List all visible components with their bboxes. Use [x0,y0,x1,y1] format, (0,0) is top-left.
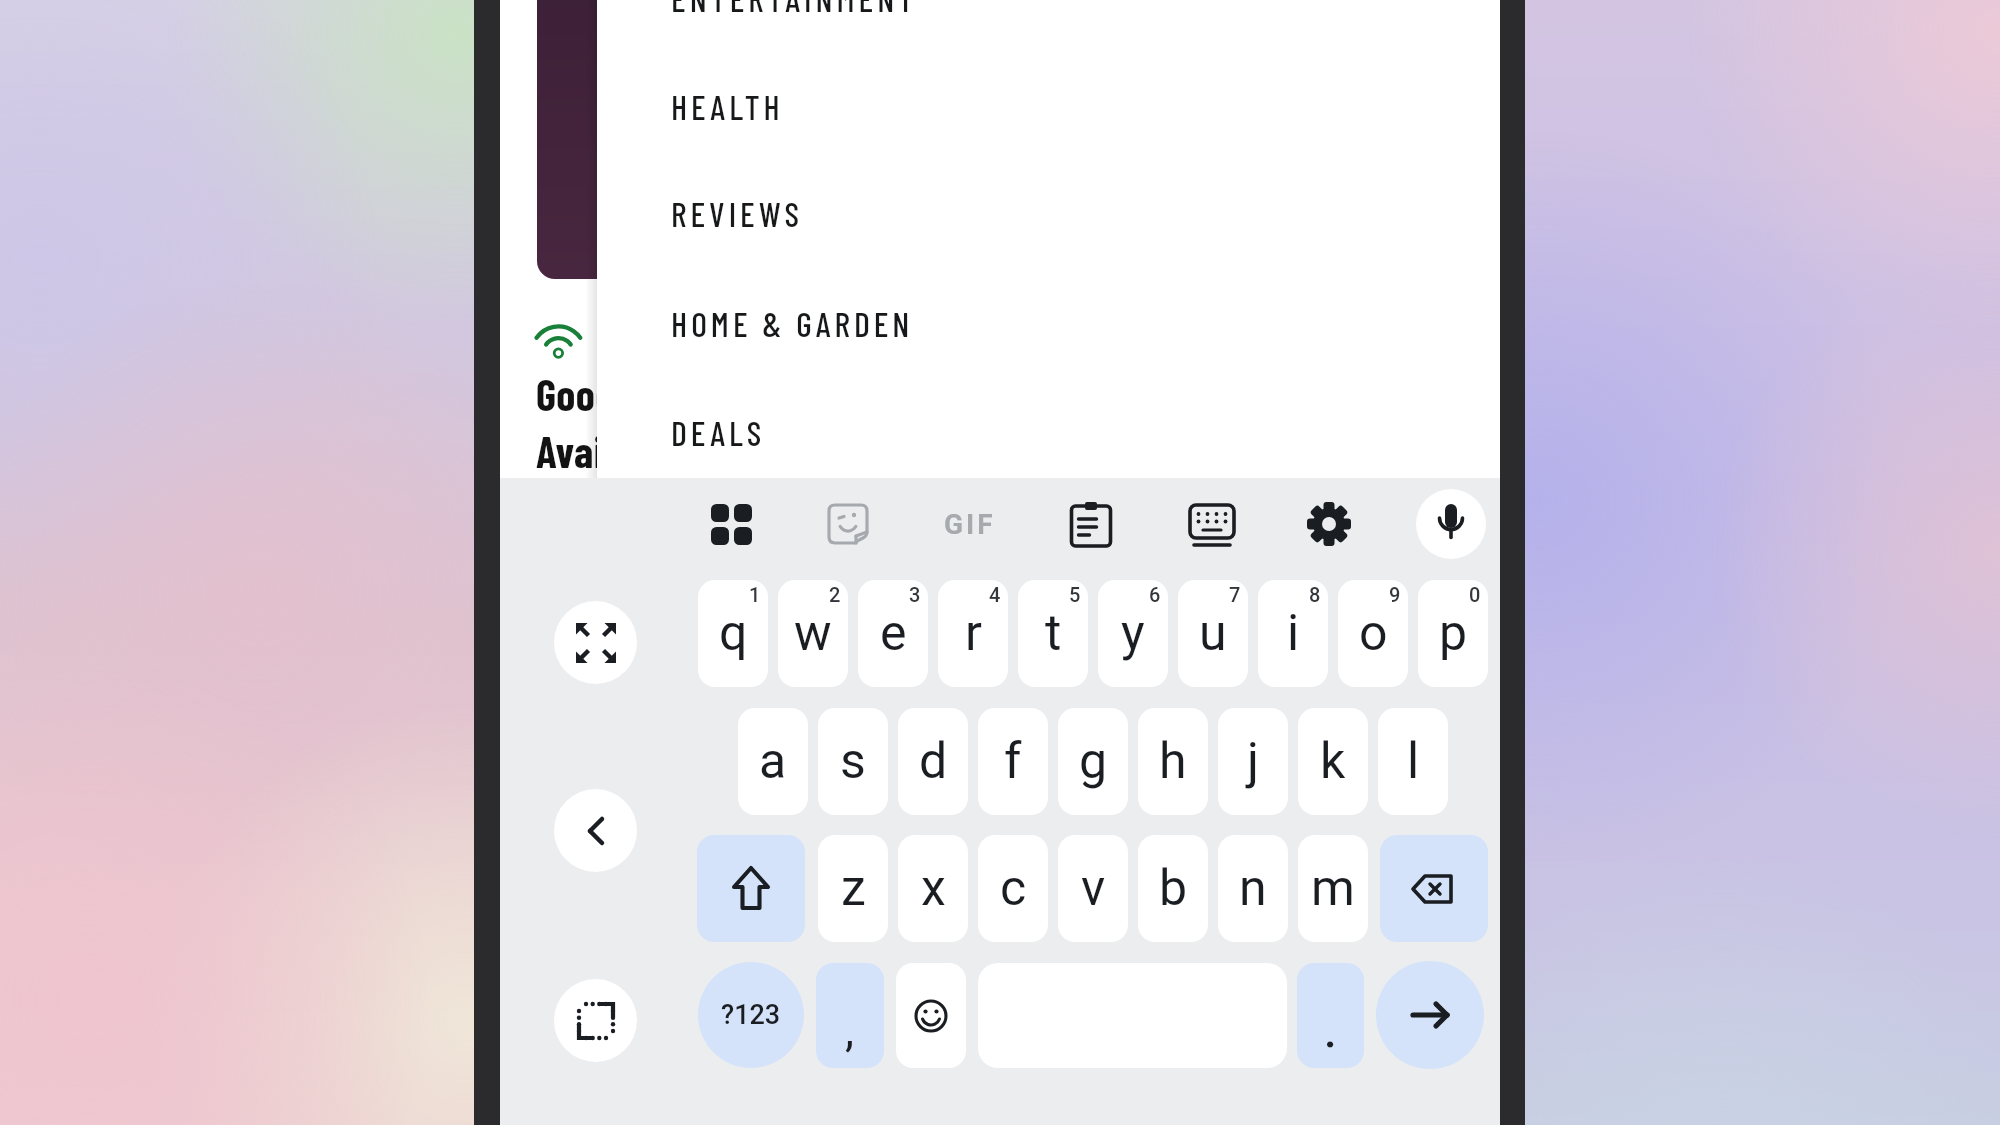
staticText: s [840,732,866,791]
staticText: Good [536,368,616,420]
button[interactable]: . [1297,963,1364,1068]
button[interactable] [1067,500,1115,548]
button[interactable]: b [1138,835,1208,942]
staticText: 2 [829,583,841,606]
staticText: m [1311,859,1355,918]
staticText: y [1121,604,1145,663]
button[interactable]: f [978,708,1048,815]
button[interactable] [698,580,768,687]
staticText: Avail [536,425,614,477]
button[interactable] [938,580,1008,687]
button[interactable]: ?123 [698,962,804,1068]
button[interactable] [1338,580,1408,687]
staticText: 7 [1229,583,1241,606]
staticText: 5 [1069,583,1081,606]
button[interactable] [824,500,872,548]
staticText: v [1081,859,1106,918]
staticText: x [921,859,946,918]
button[interactable]: HOME & GARDEN [660,301,1410,345]
staticText: 3 [909,583,921,606]
staticText: e [880,604,907,663]
staticText: . [1323,995,1338,1061]
staticText: ?123 [721,999,781,1031]
button[interactable]: n [1218,835,1288,942]
staticText: q [719,604,748,663]
button[interactable]: s [818,708,888,815]
button[interactable]: l [1378,708,1448,815]
button[interactable]: d [898,708,968,815]
staticText: d [919,732,948,791]
staticText: DEALS [671,412,766,453]
button[interactable] [1187,500,1237,550]
staticText: 8 [1309,583,1321,606]
button[interactable] [1380,835,1488,942]
button[interactable] [1098,580,1168,687]
button[interactable] [1258,580,1328,687]
button[interactable]: , [816,963,884,1068]
staticText: z [841,859,866,918]
staticText: ENTERTAINMENT [671,0,918,19]
button[interactable] [858,580,928,687]
staticText: k [1320,732,1346,791]
staticText: REVIEWS [671,193,803,234]
button[interactable]: h [1138,708,1208,815]
staticText: b [1159,859,1188,918]
staticText: o [1359,604,1388,663]
staticText: f [1004,732,1022,791]
staticText: 6 [1149,583,1161,606]
staticText: 4 [989,583,1001,606]
staticText: HEALTH [671,86,784,127]
button[interactable] [1416,489,1486,559]
staticText: c [1000,859,1027,918]
staticText: HOME & GARDEN [671,303,914,344]
button[interactable]: v [1058,835,1128,942]
staticText: 1 [749,583,761,606]
button[interactable] [554,979,637,1062]
staticText: g [1079,732,1108,791]
button[interactable]: GIF [940,506,1000,542]
button[interactable]: x [898,835,968,942]
staticText: p [1439,604,1468,663]
button[interactable] [896,963,966,1068]
staticText: GIF [944,508,996,541]
button[interactable]: DEALS [660,410,1410,454]
button[interactable] [1018,580,1088,687]
button[interactable]: g [1058,708,1128,815]
button[interactable]: m [1298,835,1368,942]
staticText: r [965,604,982,663]
button[interactable]: REVIEWS [660,191,1410,235]
button[interactable] [707,500,755,548]
staticText: n [1239,859,1267,918]
button[interactable]: c [978,835,1048,942]
staticText: a [759,732,787,791]
button[interactable]: j [1218,708,1288,815]
button[interactable] [554,789,637,872]
staticText: t [1045,604,1062,663]
staticText: l [1407,732,1420,791]
staticText: , [845,1003,855,1057]
button[interactable]: a [738,708,808,815]
button[interactable] [1305,500,1353,548]
button[interactable]: HEALTH [660,84,1410,128]
button[interactable]: z [818,835,888,942]
staticText: u [1199,604,1227,663]
button[interactable]: ENTERTAINMENT [660,0,1410,20]
button[interactable] [778,580,848,687]
button[interactable]: k [1298,708,1368,815]
staticText: 0 [1469,583,1481,606]
staticText: 9 [1389,583,1401,606]
button[interactable] [1418,580,1488,687]
staticText: w [794,604,832,663]
button[interactable] [1178,580,1248,687]
staticText: j [1247,732,1259,791]
staticText: i [1287,604,1300,663]
button[interactable] [697,835,805,942]
button[interactable] [554,601,637,684]
button[interactable] [1376,961,1484,1069]
staticText: h [1159,732,1187,791]
